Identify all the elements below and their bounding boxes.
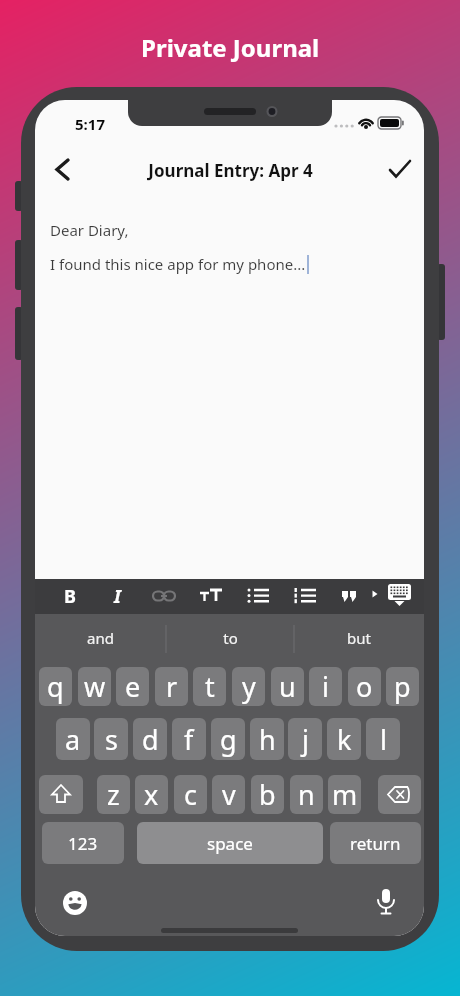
button[interactable]: w (78, 667, 111, 706)
staticText: u (279, 668, 296, 705)
button[interactable]: z (97, 775, 130, 814)
button[interactable] (378, 775, 421, 814)
button[interactable] (47, 150, 87, 190)
button[interactable] (337, 581, 367, 611)
button[interactable] (243, 581, 273, 611)
button[interactable]: 123 (42, 822, 124, 864)
button[interactable]: l (366, 718, 400, 760)
staticText: y (242, 668, 256, 705)
button[interactable]: x (135, 775, 168, 814)
staticText: n (298, 776, 315, 813)
staticText: m (332, 776, 358, 813)
button[interactable]: c (174, 775, 207, 814)
button[interactable]: t (193, 667, 226, 706)
button[interactable]: space (137, 822, 323, 864)
button[interactable]: B (55, 581, 85, 611)
staticText: i (322, 668, 329, 705)
button[interactable]: f (172, 718, 206, 760)
button[interactable] (196, 581, 226, 611)
staticText: to (223, 628, 238, 648)
staticText: d (142, 721, 159, 758)
staticText: and (87, 628, 114, 648)
button[interactable]: p (386, 667, 419, 706)
button[interactable] (380, 150, 420, 190)
staticText: I (114, 584, 121, 609)
staticText: l (380, 721, 387, 758)
button[interactable]: j (288, 718, 322, 760)
button[interactable] (371, 886, 401, 920)
button[interactable]: v (212, 775, 245, 814)
staticText: x (144, 776, 159, 813)
button[interactable] (384, 579, 416, 611)
staticText: j (302, 721, 309, 758)
button[interactable] (290, 581, 320, 611)
staticText: space (207, 832, 253, 855)
staticText: Dear Diary, (50, 220, 129, 240)
button[interactable]: q (39, 667, 72, 706)
button[interactable]: g (211, 718, 245, 760)
staticText: return (350, 832, 401, 855)
staticText: f (184, 721, 194, 758)
staticText: 123 (68, 832, 98, 855)
button[interactable]: to (166, 624, 294, 652)
staticText: h (259, 721, 276, 758)
button[interactable]: y (232, 667, 265, 706)
button[interactable]: d (133, 718, 167, 760)
button[interactable]: return (330, 822, 421, 864)
staticText: w (84, 668, 106, 705)
staticText: r (166, 668, 178, 705)
staticText: g (220, 721, 237, 758)
button[interactable]: I (102, 581, 132, 611)
staticText: but (347, 628, 371, 648)
staticText: Journal Entry: Apr 4 (148, 159, 313, 182)
staticText: c (184, 776, 197, 813)
button[interactable] (61, 889, 89, 917)
button[interactable]: b (251, 775, 284, 814)
button[interactable]: u (271, 667, 304, 706)
staticText: I found this nice app for my phone... (50, 254, 306, 274)
staticText: B (64, 584, 76, 609)
button[interactable]: s (94, 718, 128, 760)
button[interactable]: i (309, 667, 342, 706)
button[interactable] (149, 581, 179, 611)
button[interactable]: and (35, 624, 166, 652)
staticText: q (47, 668, 64, 705)
staticText: p (394, 668, 411, 705)
staticText: z (107, 776, 120, 813)
staticText: a (65, 721, 81, 758)
staticText: Private Journal (141, 31, 320, 64)
button[interactable]: k (327, 718, 361, 760)
button[interactable]: a (56, 718, 90, 760)
staticText: o (356, 668, 373, 705)
staticText: v (222, 776, 236, 813)
button[interactable]: n (290, 775, 323, 814)
staticText: t (205, 668, 215, 705)
staticText: b (259, 776, 276, 813)
button[interactable]: r (155, 667, 188, 706)
button[interactable]: but (294, 624, 424, 652)
button[interactable]: m (328, 775, 361, 814)
button[interactable]: h (250, 718, 284, 760)
staticText: k (337, 721, 352, 758)
staticText: s (105, 721, 118, 758)
button[interactable]: o (348, 667, 381, 706)
staticText: 5:17 (75, 114, 105, 134)
button[interactable] (39, 775, 83, 814)
button[interactable]: e (116, 667, 149, 706)
staticText: e (125, 668, 141, 705)
